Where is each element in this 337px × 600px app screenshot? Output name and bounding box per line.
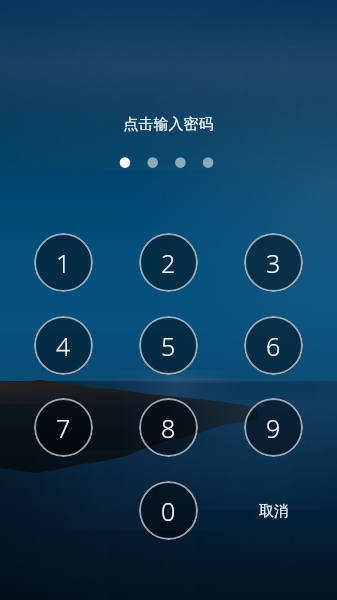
button[interactable]: 7 [34, 398, 93, 457]
staticText: 4 [56, 329, 71, 363]
staticText: 6 [266, 329, 281, 363]
staticText: 3 [266, 246, 281, 280]
staticText: 5 [161, 329, 176, 363]
button[interactable]: 9 [244, 398, 303, 457]
button[interactable]: 取消 [242, 495, 306, 527]
staticText: 0 [161, 494, 176, 528]
button[interactable]: 1 [34, 233, 93, 292]
staticText: 取消 [259, 502, 289, 521]
button[interactable]: 6 [244, 316, 303, 375]
staticText: 点击输入密码 [0, 115, 337, 600]
staticText: 1 [56, 246, 71, 280]
staticText: 8 [161, 411, 176, 445]
staticText: 2 [161, 246, 176, 280]
staticText: 7 [56, 411, 71, 445]
button[interactable]: 0 [139, 481, 198, 540]
button[interactable]: 3 [244, 233, 303, 292]
button[interactable]: 8 [139, 398, 198, 457]
button[interactable]: 2 [139, 233, 198, 292]
button[interactable]: 4 [34, 316, 93, 375]
button[interactable]: 5 [139, 316, 198, 375]
staticText: 9 [266, 411, 281, 445]
